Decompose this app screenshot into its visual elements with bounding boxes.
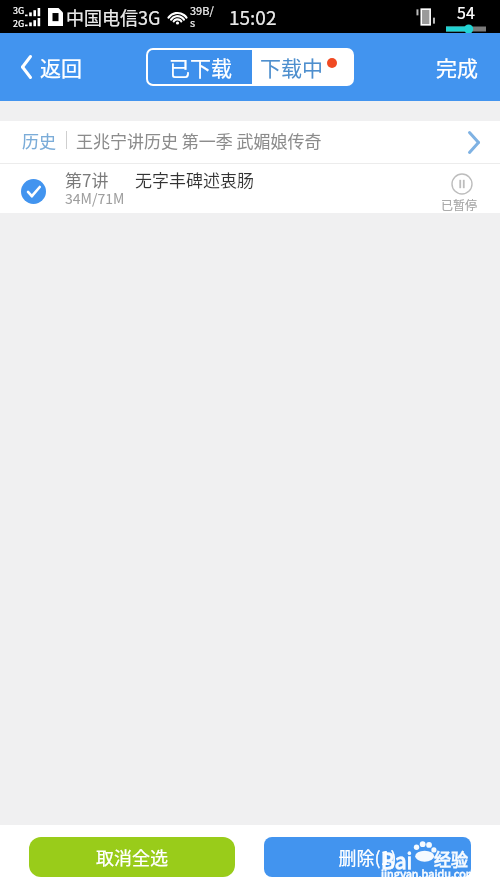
button[interactable]: 历史 xyxy=(0,121,500,163)
other: Selected xyxy=(21,179,46,204)
staticText: 54 xyxy=(457,0,475,23)
staticText: 第7讲 xyxy=(65,167,109,192)
staticText: 完成 xyxy=(436,52,478,82)
button[interactable]: 删除(1) xyxy=(264,837,471,877)
button[interactable]: 已下载 xyxy=(148,50,252,84)
staticText: 无字丰碑述衷肠 xyxy=(135,167,254,192)
button[interactable]: 下载中 xyxy=(252,50,352,84)
staticText: 2G xyxy=(13,17,25,30)
staticText: 39B/s xyxy=(190,2,214,31)
staticText: 王兆宁讲历史 第一季 武媚娘传奇 xyxy=(76,128,322,153)
staticText: 经验 xyxy=(434,846,468,871)
staticText: 已暂停 xyxy=(441,196,478,213)
staticText: jingyan.baidu.com xyxy=(381,865,477,881)
button[interactable]: Selected xyxy=(0,164,500,213)
staticText: 34M/71M xyxy=(65,188,125,208)
staticText: 历史 xyxy=(22,128,56,153)
staticText: 返回 xyxy=(40,52,82,82)
button[interactable]: 完成 xyxy=(422,42,500,92)
staticText: 已下载 xyxy=(169,52,232,82)
staticText: Bai xyxy=(381,845,413,875)
staticText: 中国电信3G xyxy=(66,4,161,30)
button[interactable]: Paused xyxy=(443,173,480,213)
staticText: 15:02 xyxy=(229,3,277,31)
button[interactable]: 取消全选 xyxy=(29,837,235,877)
staticText: 下载中 xyxy=(260,52,323,82)
staticText: 3G xyxy=(13,4,25,17)
other: Paused xyxy=(451,173,473,195)
staticText: 0B/s xyxy=(190,31,213,35)
button[interactable]: 返回 xyxy=(0,42,92,92)
staticText: 取消全选 xyxy=(96,844,168,870)
staticText: 删除(1) xyxy=(338,844,397,870)
